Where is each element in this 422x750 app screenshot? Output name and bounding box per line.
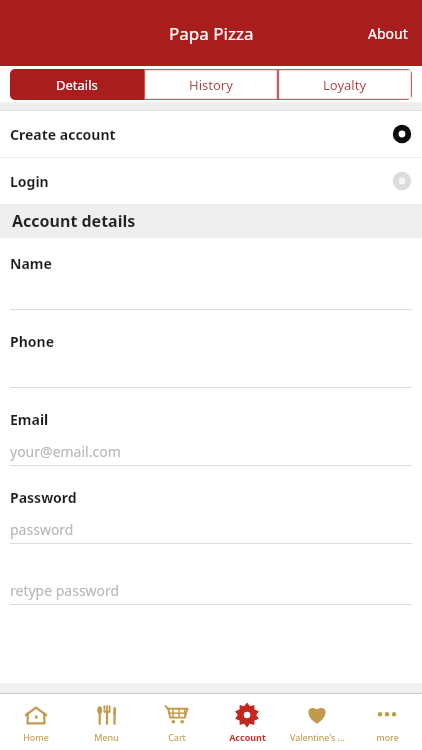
- button[interactable]: Account: [212, 694, 282, 750]
- button[interactable]: Valentine's: [282, 694, 352, 750]
- button[interactable]: Home: [0, 694, 71, 750]
- staticText: Create account: [10, 125, 116, 144]
- staticText: password: [10, 520, 74, 539]
- button[interactable]: Create account: [0, 111, 422, 157]
- staticText: Email: [10, 410, 49, 429]
- staticText: Account: [229, 731, 266, 743]
- button[interactable]: More: [352, 694, 422, 750]
- button[interactable]: Menu: [71, 694, 142, 750]
- button[interactable]: Login: [0, 158, 422, 204]
- staticText: Valentine's ...: [290, 731, 345, 743]
- staticText: Home: [23, 731, 49, 743]
- staticText: Menu: [94, 731, 119, 743]
- staticText: Cart: [168, 731, 186, 743]
- button[interactable]: password: [10, 507, 412, 543]
- button[interactable]: History: [144, 69, 278, 100]
- button[interactable]: retype password: [10, 568, 412, 604]
- staticText: Name: [10, 254, 52, 273]
- staticText: Account details: [12, 210, 136, 232]
- staticText: Loyalty: [323, 76, 367, 94]
- staticText: Details: [56, 76, 98, 94]
- staticText: About: [368, 24, 408, 43]
- button[interactable]: your@email.com: [10, 429, 412, 465]
- staticText: retype password: [10, 581, 120, 600]
- button[interactable]: Cart: [142, 694, 212, 750]
- staticText: History: [189, 76, 233, 94]
- button[interactable]: Loyalty: [278, 69, 412, 100]
- button[interactable]: Details: [10, 69, 144, 100]
- staticText: more: [376, 731, 399, 743]
- staticText: your@email.com: [10, 442, 121, 461]
- staticText: Phone: [10, 332, 55, 351]
- staticText: Password: [10, 488, 77, 507]
- staticText: Login: [10, 172, 49, 191]
- button[interactable]: About: [354, 14, 422, 53]
- staticText: Papa Pizza: [169, 22, 254, 45]
